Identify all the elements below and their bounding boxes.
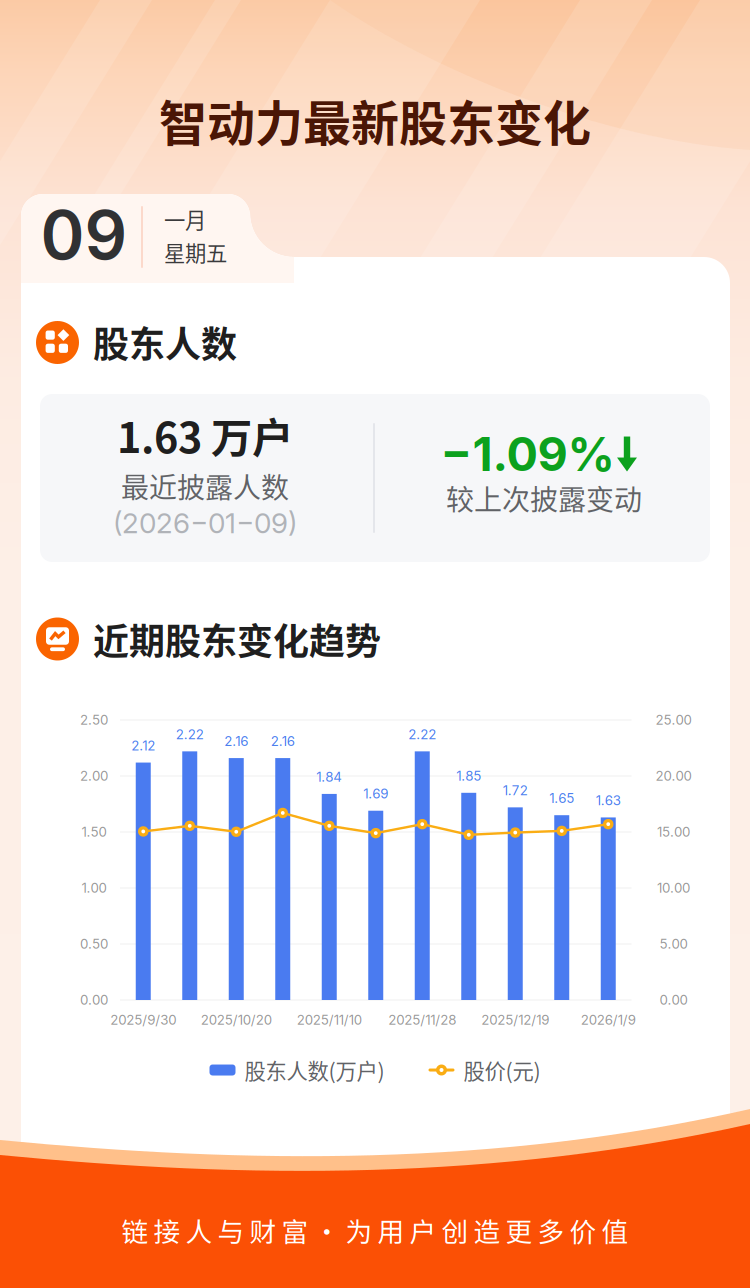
staticText: 2.12 bbox=[131, 737, 155, 754]
staticText: 2.22 bbox=[176, 726, 204, 742]
staticText: 2.00 bbox=[80, 768, 108, 784]
staticText: 2025/11/10 bbox=[297, 1012, 362, 1028]
staticText: 09 bbox=[40, 195, 127, 275]
staticText: 近期股东变化趋势 bbox=[93, 613, 381, 665]
staticText: 15.00 bbox=[657, 824, 690, 840]
staticText: 2025/10/20 bbox=[201, 1012, 272, 1028]
staticText: 1.84 bbox=[316, 769, 342, 785]
staticText: 0.00 bbox=[659, 992, 687, 1008]
staticText: 1.63 万户 bbox=[117, 405, 293, 465]
staticText: 0.00 bbox=[80, 992, 108, 1008]
staticText: 股价(元) bbox=[463, 1055, 540, 1085]
staticText: 1.50 bbox=[81, 824, 106, 840]
staticText: 一月 bbox=[164, 204, 206, 234]
staticText: 10.00 bbox=[657, 880, 690, 896]
staticText: 最近披露人数 bbox=[121, 466, 289, 506]
staticText: 2.16 bbox=[224, 733, 248, 749]
staticText: 2025/9/30 bbox=[110, 1012, 176, 1028]
staticText: 0.50 bbox=[80, 936, 108, 952]
staticText: 股东人数 bbox=[93, 316, 237, 368]
staticText: 2.16 bbox=[271, 733, 295, 749]
staticText: −1.09% bbox=[440, 426, 614, 482]
staticText: 1.65 bbox=[549, 790, 574, 806]
staticText: 1.00 bbox=[81, 880, 106, 896]
staticText: 20.00 bbox=[655, 768, 691, 784]
staticText: 2.50 bbox=[80, 712, 108, 728]
staticText: 1.72 bbox=[503, 782, 528, 798]
staticText: 2025/11/28 bbox=[388, 1012, 456, 1028]
staticText: 股东人数(万户) bbox=[244, 1055, 384, 1085]
staticText: 2025/12/19 bbox=[481, 1012, 549, 1028]
staticText: 5.00 bbox=[659, 936, 687, 952]
staticText: 星期五 bbox=[164, 237, 227, 267]
staticText: 25.00 bbox=[655, 712, 691, 728]
staticText: 1.85 bbox=[456, 768, 481, 784]
staticText: 较上次披露变动 bbox=[446, 478, 642, 518]
staticText: 1.63 bbox=[596, 792, 621, 808]
staticText: 1.69 bbox=[363, 786, 388, 802]
staticText: 2.22 bbox=[408, 726, 436, 742]
staticText: 2026/1/9 bbox=[581, 1012, 636, 1028]
staticText: 智动力最新股东变化 bbox=[159, 85, 591, 155]
staticText: (2026−01−09) bbox=[113, 506, 297, 540]
staticText: 链接人与财富·为用户创造更多价值 bbox=[121, 1211, 628, 1249]
